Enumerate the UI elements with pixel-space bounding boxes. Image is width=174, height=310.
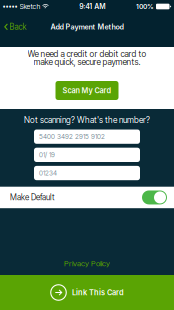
staticText: We need a credit or debit card to xyxy=(27,49,146,59)
staticText: Make Default xyxy=(10,193,55,202)
button[interactable]: Make Default xyxy=(0,187,174,208)
staticText: ••••• xyxy=(2,3,17,10)
staticText: Back xyxy=(9,22,26,32)
staticText: make quick, secure payments. xyxy=(33,57,140,67)
button[interactable]: Scan My Card xyxy=(55,81,118,100)
staticText: Add Payment Method xyxy=(50,22,123,31)
staticText: Not scanning? What's the number? xyxy=(24,115,150,125)
staticText: Link This Card xyxy=(72,288,124,297)
staticText: 9:41 AM xyxy=(79,2,105,11)
staticText: Privacy Policy xyxy=(64,259,110,268)
staticText: Sketch xyxy=(19,2,40,11)
button[interactable]: Back xyxy=(0,17,30,37)
staticText: Scan My Card xyxy=(62,86,111,95)
button[interactable]: Link This Card xyxy=(0,275,174,310)
button[interactable]: Privacy Policy xyxy=(58,256,116,271)
staticText: 01234 xyxy=(39,169,57,177)
staticText: 01/ 19 xyxy=(39,151,55,159)
staticText: 5400 3492 2915 9102 xyxy=(39,133,105,141)
staticText: 100% xyxy=(136,2,154,11)
